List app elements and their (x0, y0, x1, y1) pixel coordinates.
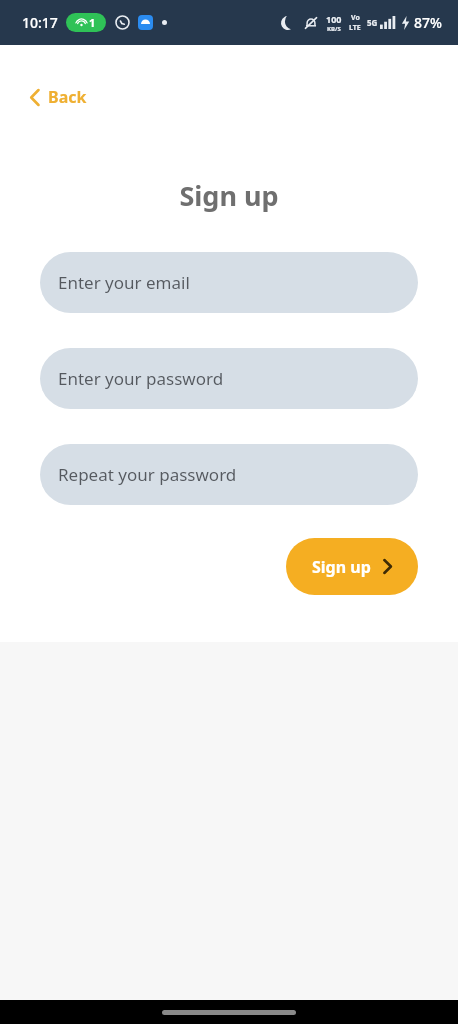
staticText: KB/S (327, 25, 341, 33)
button[interactable]: Enter your password (40, 348, 418, 409)
button[interactable]: Sign up (286, 538, 418, 595)
staticText: Enter your password (58, 367, 224, 390)
staticText: 10:17 (22, 13, 58, 32)
staticText: Enter your email (58, 271, 190, 294)
staticText: Sign up (0, 177, 458, 214)
staticText: LTE (349, 23, 361, 33)
staticText: 1 (89, 15, 96, 30)
button[interactable]: Enter your email (40, 252, 418, 313)
button[interactable]: Back (24, 80, 93, 114)
staticText: Repeat your password (58, 463, 237, 486)
staticText: 5G (367, 17, 378, 28)
staticText: Vo (351, 13, 360, 23)
staticText: 100 (326, 13, 342, 25)
staticText: 87% (414, 13, 442, 32)
staticText: Back (48, 86, 87, 108)
button[interactable]: Repeat your password (40, 444, 418, 505)
staticText: Sign up (312, 556, 371, 578)
